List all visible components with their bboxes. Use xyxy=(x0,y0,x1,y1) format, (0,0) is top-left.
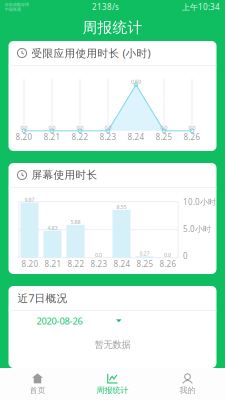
staticText: 8.26 xyxy=(159,258,176,269)
staticText: 0.27 xyxy=(139,250,149,257)
button[interactable]: 我的 xyxy=(150,368,225,400)
staticText: 0 xyxy=(183,250,188,261)
staticText: 0.0 xyxy=(164,251,171,258)
staticText: 9.87 xyxy=(24,196,34,203)
staticText: 0.69 xyxy=(131,78,141,85)
staticText: 8.24 xyxy=(113,258,130,269)
staticText: 10.0小时 xyxy=(183,196,216,207)
staticText: 上午10:34 xyxy=(182,2,220,12)
staticText: 8.55 xyxy=(116,203,126,211)
staticText: 8.20 xyxy=(21,258,38,269)
staticText: 8.21 xyxy=(44,258,61,269)
staticText: 我的 xyxy=(179,385,195,395)
staticText: 周报统计 xyxy=(82,18,142,36)
staticText: 受限应用使用时长 (小时) xyxy=(31,46,150,60)
staticText: 0.0 xyxy=(104,124,111,131)
staticText: 5.88 xyxy=(70,218,80,225)
staticText: 8.23 xyxy=(99,131,116,142)
button[interactable]: 首页 xyxy=(0,368,75,400)
staticText: 周报统计 xyxy=(96,385,128,395)
staticText: 8.25 xyxy=(136,258,153,269)
staticText: 中国联通 xyxy=(5,7,21,12)
staticText: 8.21 xyxy=(43,131,60,142)
staticText: 8.22 xyxy=(67,258,84,269)
staticText: 8.26 xyxy=(183,131,200,142)
staticText: 8.24 xyxy=(127,131,144,142)
staticText: 0.0 xyxy=(160,124,167,131)
staticText: 0.0 xyxy=(48,124,55,131)
staticText: 0.0 xyxy=(20,124,27,131)
staticText: 8.22 xyxy=(71,131,88,142)
staticText: 0.0 xyxy=(95,251,102,258)
staticText: 4.83 xyxy=(47,224,57,231)
staticText: 2020-08-26 xyxy=(36,315,82,327)
staticText: 屏幕使用时长 xyxy=(31,168,97,181)
staticText: 0.0 xyxy=(188,124,195,131)
staticText: 首页 xyxy=(29,385,45,395)
button[interactable]: 2020-08-26 xyxy=(8,311,121,331)
staticText: 暂无数据 xyxy=(94,339,130,350)
staticText: 8.23 xyxy=(90,258,107,269)
button[interactable]: 周报统计 xyxy=(75,368,150,400)
staticText: 近7日概况 xyxy=(17,291,67,305)
staticText: 0.0 xyxy=(76,124,83,131)
staticText: 目前成数应用 xyxy=(5,2,29,7)
staticText: 8.25 xyxy=(155,131,172,142)
staticText: 5.0小时 xyxy=(183,223,211,234)
staticText: 8.20 xyxy=(15,131,32,142)
staticText: 2138/s xyxy=(92,2,119,12)
